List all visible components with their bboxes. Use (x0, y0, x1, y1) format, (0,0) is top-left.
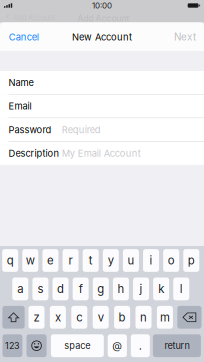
staticText: i (149, 254, 152, 267)
staticText: l (180, 282, 183, 296)
staticText: d (57, 282, 64, 296)
staticText: Description (8, 148, 59, 159)
staticText: a (17, 282, 23, 296)
staticText: o (168, 254, 175, 267)
staticText: My Email Account (62, 148, 141, 159)
staticText: Email (8, 100, 31, 112)
button[interactable]: Emoji (26, 334, 47, 357)
staticText: w (26, 254, 35, 267)
button[interactable]: Delete (177, 306, 201, 329)
button[interactable]: x (50, 306, 66, 329)
staticText: space (64, 340, 90, 351)
button[interactable]: j (133, 277, 149, 300)
button[interactable]: a (12, 277, 28, 300)
staticText: r (69, 254, 73, 267)
staticText: c (76, 310, 82, 324)
button[interactable]: 123 (2, 334, 22, 357)
staticText: Cancel (9, 31, 39, 43)
staticText: j (139, 282, 142, 296)
button[interactable]: o (163, 249, 179, 272)
button[interactable]: l (173, 277, 189, 300)
staticText: n (140, 310, 147, 324)
staticText: b (119, 310, 126, 324)
button[interactable]: Cancel (0, 22, 48, 52)
staticText: return (164, 340, 189, 351)
button[interactable]: Next (166, 22, 204, 52)
button[interactable]: v (93, 306, 109, 329)
button[interactable]: y (103, 249, 119, 272)
button[interactable]: s (32, 277, 48, 300)
button[interactable]: space (51, 334, 104, 357)
button[interactable]: d (52, 277, 68, 300)
button[interactable]: @ (108, 334, 127, 357)
button[interactable]: m (157, 306, 173, 329)
staticText: New Account (72, 31, 132, 43)
button[interactable]: Shift (2, 306, 25, 329)
button[interactable]: i (143, 249, 159, 272)
button[interactable]: g (93, 277, 109, 300)
staticText: Add Account (77, 13, 129, 23)
button[interactable]: k (153, 277, 169, 300)
staticText: Required (62, 124, 101, 135)
staticText: m (160, 310, 170, 324)
button[interactable]: c (71, 306, 87, 329)
button[interactable]: return (153, 334, 201, 357)
button[interactable]: z (28, 306, 44, 329)
button[interactable]: p (183, 249, 199, 272)
staticText: s (37, 282, 43, 296)
button[interactable]: f (73, 277, 89, 300)
staticText: p (188, 254, 195, 267)
button[interactable]: . (131, 334, 150, 357)
staticText: t (89, 254, 93, 267)
staticText: . (139, 339, 142, 352)
button[interactable]: q (2, 249, 18, 272)
staticText: z (33, 310, 39, 324)
staticText: f (79, 282, 83, 296)
staticText: q (7, 254, 14, 267)
staticText: h (117, 282, 124, 296)
staticText: x (55, 310, 61, 324)
staticText: k (158, 282, 164, 296)
button[interactable]: n (135, 306, 151, 329)
staticText: 123 (5, 340, 20, 351)
staticText: g (97, 282, 104, 296)
staticText: y (108, 254, 114, 267)
staticText: e (47, 254, 54, 267)
staticText: u (127, 254, 134, 267)
button[interactable]: e (42, 249, 58, 272)
staticText: v (98, 310, 104, 324)
button[interactable]: h (113, 277, 129, 300)
staticText: Name (8, 77, 33, 88)
button[interactable]: r (63, 249, 79, 272)
button[interactable]: t (83, 249, 99, 272)
staticText: Next (174, 31, 196, 43)
staticText: Password (8, 124, 51, 135)
button[interactable]: w (22, 249, 38, 272)
button[interactable]: u (123, 249, 139, 272)
button[interactable]: b (114, 306, 130, 329)
staticText: 10:00 (92, 1, 112, 10)
staticText: @ (112, 340, 122, 352)
